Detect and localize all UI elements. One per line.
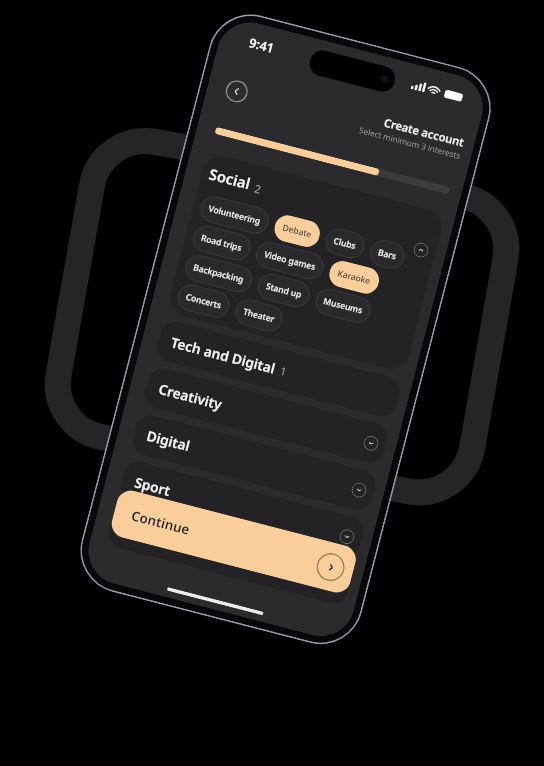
button[interactable]: Continue	[108, 487, 359, 596]
button[interactable]: Bars	[367, 237, 408, 272]
button[interactable]: Theater	[232, 296, 286, 334]
staticText: Sport	[133, 473, 172, 500]
staticText: Debate	[281, 222, 313, 241]
staticText: Continue	[129, 506, 191, 539]
staticText: Social	[207, 164, 253, 194]
staticText: Tech and Digital	[169, 332, 278, 377]
button[interactable]: Backpacking	[182, 252, 255, 295]
staticText: Volunteering	[207, 202, 262, 227]
button[interactable]: Concerts	[175, 282, 232, 321]
button[interactable]: Tech and Digital	[154, 319, 403, 420]
button[interactable]: Sport	[118, 459, 366, 560]
button[interactable]: Digital	[130, 412, 378, 513]
staticText: Museums	[322, 295, 364, 317]
button[interactable]: Stand up	[255, 271, 313, 310]
button[interactable]: Museums	[312, 286, 374, 326]
staticText: Concerts	[184, 291, 223, 311]
button[interactable]: Clubs	[323, 226, 367, 261]
button[interactable]: Debate	[272, 212, 323, 250]
staticText: Theater	[242, 306, 276, 325]
staticText: Karaoke	[336, 267, 372, 287]
staticText: Video games	[263, 248, 317, 273]
staticText: 9:41	[247, 34, 276, 57]
button[interactable]: Road trips	[190, 223, 253, 263]
staticText: Backpacking	[192, 261, 245, 286]
staticText: Create account	[383, 115, 466, 150]
button[interactable]: Collapse Social	[412, 241, 430, 259]
staticText: Select minimum 3 interests	[358, 124, 462, 161]
button[interactable]: Food	[106, 505, 354, 607]
button[interactable]: Creativity	[142, 365, 391, 466]
staticText: Stand up	[265, 280, 303, 301]
staticText: Digital	[145, 426, 192, 455]
button[interactable]: Karaoke	[326, 258, 382, 296]
button[interactable]: Video games	[253, 239, 327, 282]
staticText: 2	[253, 181, 263, 197]
staticText: Road trips	[200, 232, 244, 254]
button[interactable]: Volunteering	[198, 193, 272, 237]
button[interactable]: Back	[223, 78, 250, 105]
staticText: Food	[121, 519, 158, 546]
staticText: Clubs	[332, 235, 357, 252]
staticText: Creativity	[157, 379, 224, 413]
staticText: 1	[278, 363, 289, 379]
staticText: Bars	[377, 246, 398, 262]
